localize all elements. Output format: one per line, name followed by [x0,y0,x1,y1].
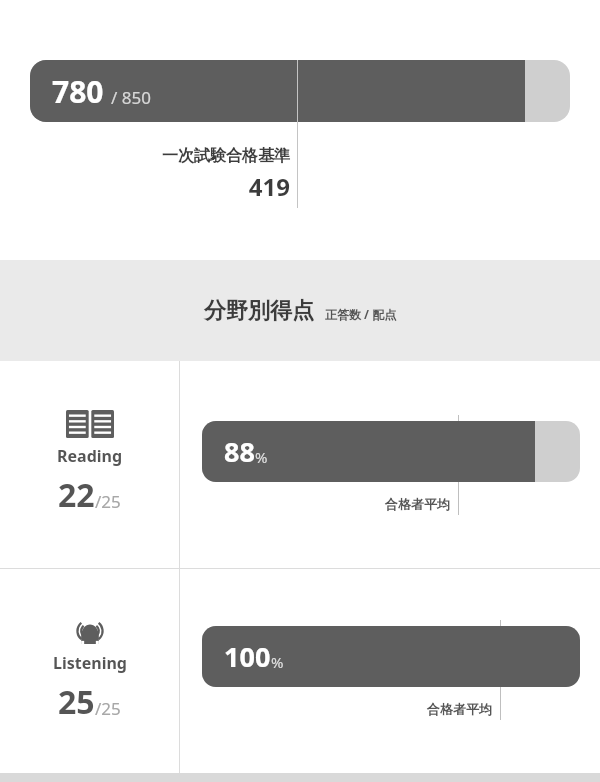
staticText: 25 [58,680,95,724]
button[interactable]: Listening [0,616,179,724]
staticText: 一次試験合格基準 [97,146,290,166]
staticText: 分野別得点 [204,297,314,325]
staticText: /25 [95,490,121,513]
staticText: / 850 [111,86,151,109]
staticText: 合格者平均 [340,496,450,512]
staticText: 正答数 / 配点 [325,306,397,322]
staticText: /25 [95,697,121,720]
staticText: 88 [224,433,255,470]
other: Reading [64,409,116,439]
other: Listening [64,616,116,646]
button[interactable]: 780 [30,60,570,122]
button[interactable]: 100 [202,626,580,687]
staticText: Listening [53,652,127,674]
staticText: 419 [97,170,290,203]
staticText: 100 [224,638,271,675]
staticText: Reading [57,445,123,467]
staticText: % [271,652,284,672]
staticText: 合格者平均 [382,701,492,717]
staticText: 22 [58,473,95,517]
staticText: 780 [52,71,104,112]
staticText: % [255,447,268,467]
button[interactable]: 88 [202,421,580,482]
button[interactable]: Reading [0,409,179,517]
